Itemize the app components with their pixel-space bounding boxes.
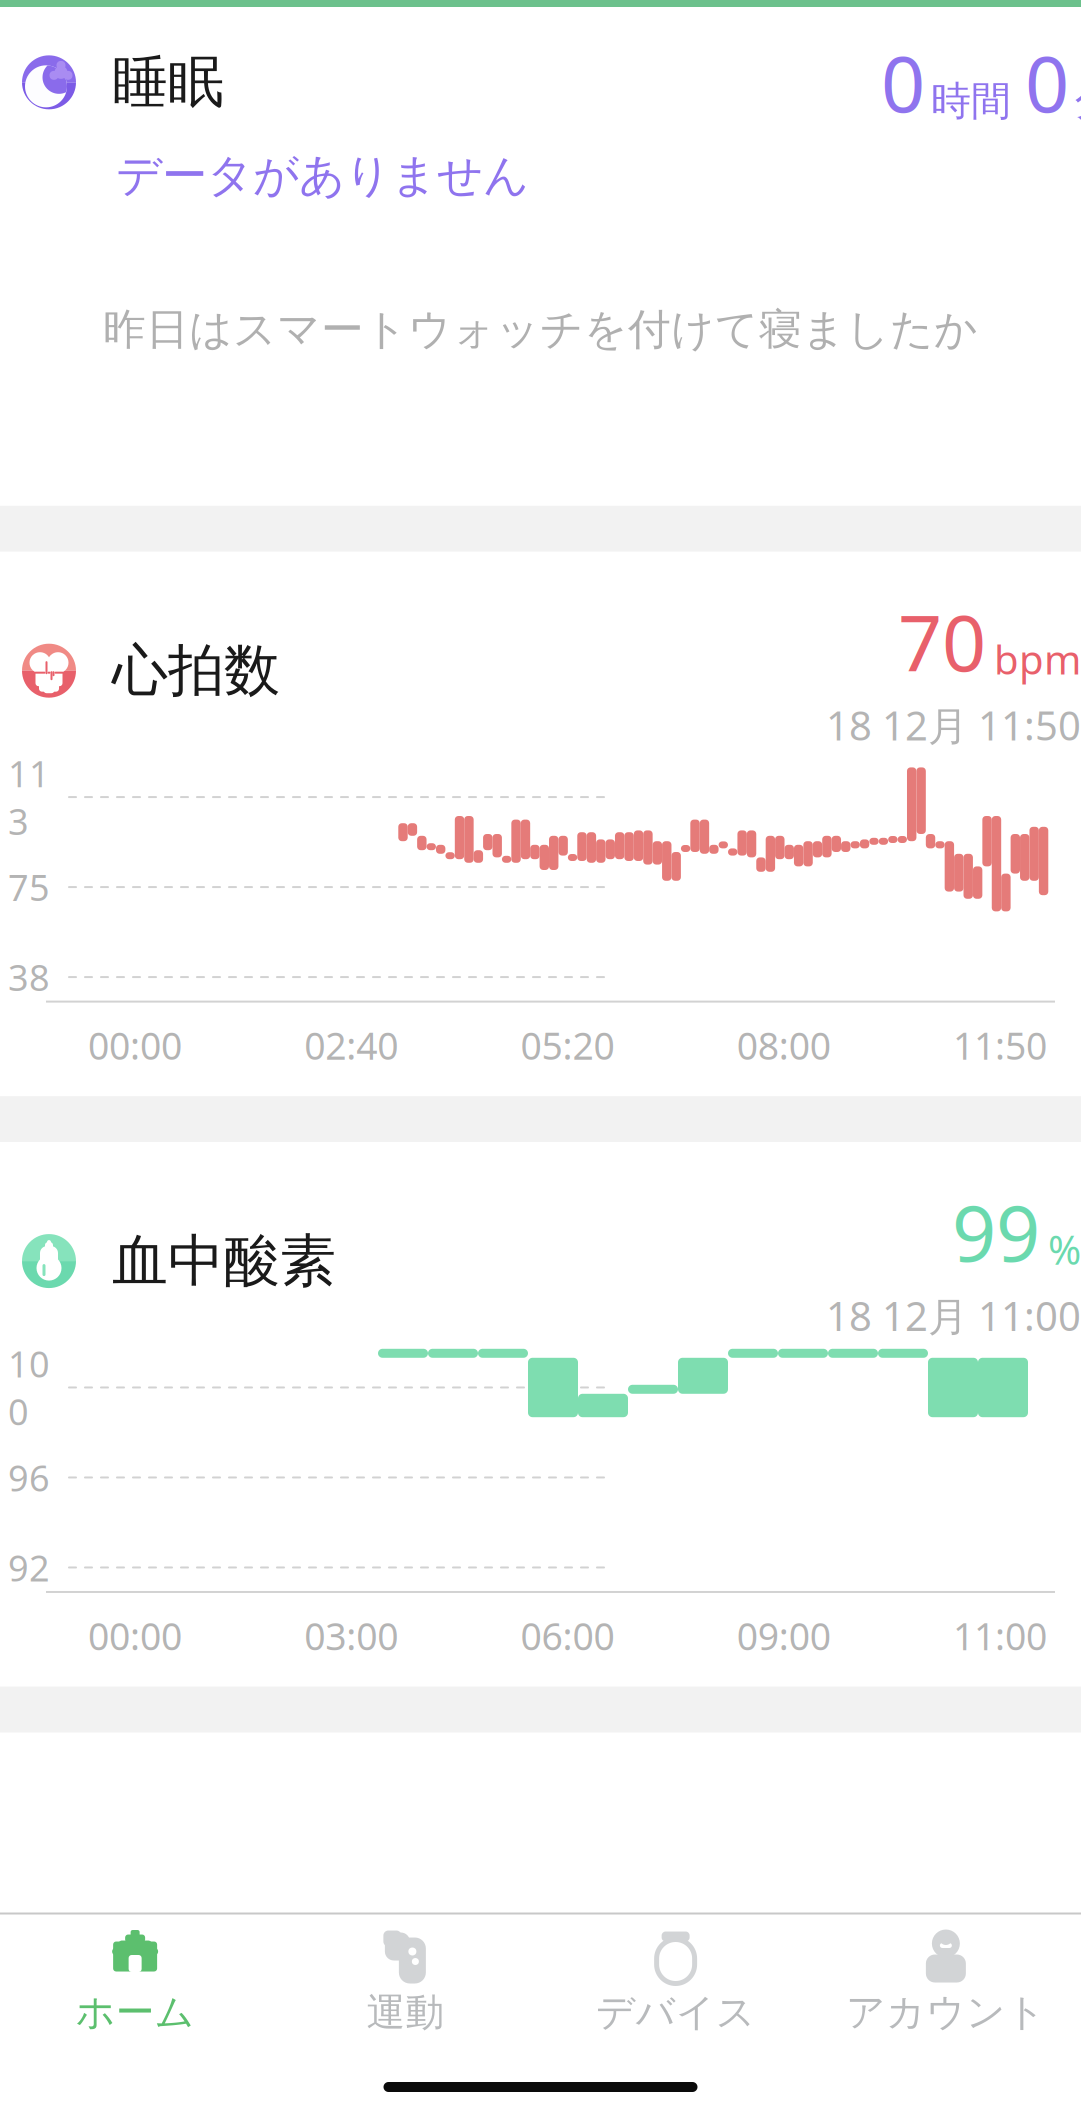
staticText: 92 bbox=[8, 1544, 50, 1591]
staticText: ホーム bbox=[76, 1988, 195, 2036]
staticText: デバイス bbox=[596, 1988, 756, 2036]
staticText: 時間 bbox=[931, 77, 1011, 126]
staticText: 0 bbox=[1025, 31, 1069, 134]
staticText: 99 bbox=[952, 1180, 1040, 1283]
staticText: 18 12月 11:50 bbox=[826, 698, 1081, 752]
staticText: 75 bbox=[8, 863, 50, 911]
staticText: 113 bbox=[8, 749, 50, 845]
staticText: 03:00 bbox=[304, 1611, 398, 1661]
staticText: 18 12月 11:00 bbox=[826, 1289, 1081, 1342]
staticText: 昨日はスマートウォッチを付けて寝ましたか bbox=[103, 303, 978, 356]
staticText: 11:00 bbox=[953, 1611, 1047, 1661]
staticText: 00:00 bbox=[88, 1021, 182, 1070]
staticText: 96 bbox=[8, 1454, 50, 1501]
button[interactable]: 運動 bbox=[270, 1914, 540, 2048]
staticText: 血中酸素 bbox=[112, 1227, 336, 1295]
staticText: 運動 bbox=[366, 1988, 444, 2036]
staticText: 100 bbox=[8, 1340, 50, 1435]
staticText: 心拍数 bbox=[112, 636, 280, 705]
staticText: 11:50 bbox=[953, 1021, 1047, 1070]
staticText: 分 bbox=[1075, 77, 1081, 126]
staticText: 05:20 bbox=[520, 1021, 614, 1070]
staticText: 06:00 bbox=[520, 1611, 614, 1661]
staticText: 38 bbox=[8, 953, 50, 1001]
staticText: 09:00 bbox=[737, 1611, 831, 1661]
staticText: 02:40 bbox=[304, 1021, 398, 1070]
staticText: 0 bbox=[881, 31, 925, 134]
staticText: % bbox=[1048, 1223, 1081, 1276]
button[interactable]: アカウント bbox=[811, 1914, 1081, 2048]
staticText: 08:00 bbox=[737, 1021, 831, 1070]
button[interactable]: ホーム bbox=[0, 1914, 270, 2048]
staticText: データがありません bbox=[116, 148, 529, 203]
staticText: アカウント bbox=[846, 1988, 1046, 2036]
staticText: 70 bbox=[898, 590, 986, 692]
staticText: 00:00 bbox=[88, 1611, 182, 1661]
staticText: bpm bbox=[994, 632, 1081, 685]
button[interactable]: デバイス bbox=[540, 1914, 811, 2048]
staticText: 睡眠 bbox=[112, 48, 224, 117]
